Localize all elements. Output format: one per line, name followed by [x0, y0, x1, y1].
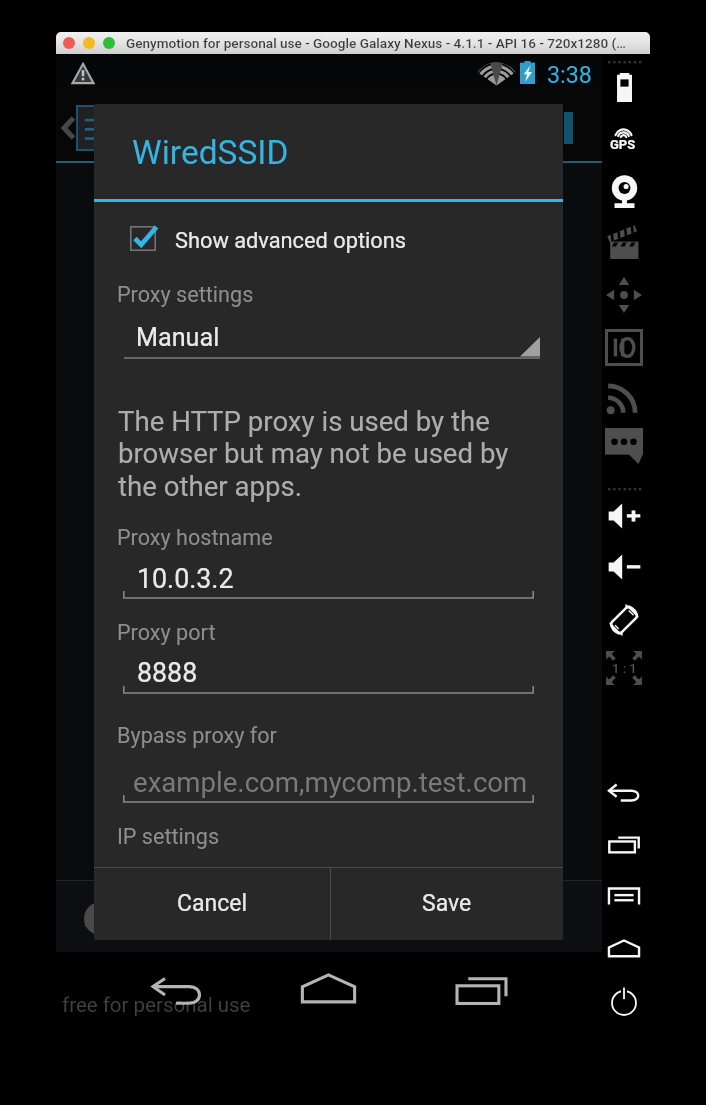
staticText: GPS — [610, 137, 636, 152]
button[interactable]: Rotate — [602, 598, 646, 642]
button[interactable]: Identifiers — [602, 323, 646, 372]
button[interactable]: Back — [146, 970, 208, 1012]
button[interactable]: Battery — [602, 67, 646, 108]
button[interactable]: Proxy settings dropdown — [124, 312, 540, 360]
button[interactable]: Record screen — [602, 223, 646, 265]
staticText: Proxy settings — [117, 282, 254, 307]
button[interactable]: Back — [602, 778, 646, 807]
staticText: IP settings — [117, 824, 220, 849]
button[interactable]: Messages — [602, 422, 646, 470]
staticText: free for personal use — [62, 993, 251, 1017]
button[interactable]: Volume down — [602, 548, 646, 586]
staticText: 10.0.3.2 — [137, 563, 234, 594]
staticText: Manual — [136, 323, 220, 353]
button[interactable]: Home — [296, 970, 362, 1010]
staticText: Save — [422, 890, 472, 917]
other: Warning — [72, 63, 94, 84]
button[interactable]: Scale 1:1 — [602, 645, 646, 691]
button[interactable]: Menu — [602, 882, 646, 911]
staticText: 1 : 1 — [612, 661, 637, 676]
button[interactable]: Save — [331, 868, 563, 940]
button[interactable]: GPS — [602, 120, 646, 158]
button[interactable]: Camera — [602, 168, 646, 214]
button[interactable] — [119, 218, 419, 260]
button[interactable]: Recent apps — [450, 970, 514, 1012]
staticText: Proxy port — [117, 620, 216, 645]
staticText: Genymotion for personal use - Google Gal… — [126, 35, 626, 51]
button[interactable]: Window button — [83, 37, 95, 49]
button[interactable]: Bypass proxy field — [123, 760, 534, 804]
button[interactable]: Network — [602, 373, 646, 421]
button[interactable]: Window button — [103, 37, 115, 49]
staticText: Proxy hostname — [117, 525, 273, 550]
staticText: WiredSSID — [132, 133, 289, 172]
button[interactable]: Home — [602, 934, 646, 963]
button[interactable]: Window button — [63, 37, 75, 49]
staticText: Show advanced options — [175, 228, 407, 254]
button[interactable]: Power — [602, 979, 646, 1022]
button[interactable]: Cancel — [94, 868, 330, 940]
staticText: Cancel — [177, 890, 248, 917]
staticText: 8888 — [137, 657, 198, 688]
button[interactable]: Recent apps — [602, 831, 646, 859]
button[interactable]: Volume up — [602, 497, 646, 535]
staticText: Bypass proxy for — [117, 723, 277, 748]
button[interactable]: Navigation — [602, 271, 646, 319]
staticText: example.com,mycomp.test.com — [133, 766, 528, 798]
staticText: The HTTP proxy is used by the browser bu… — [118, 405, 516, 502]
button[interactable]: Proxy hostname field — [123, 560, 534, 604]
button[interactable]: Proxy port field — [123, 655, 534, 699]
staticText: 3:38 — [547, 61, 592, 88]
